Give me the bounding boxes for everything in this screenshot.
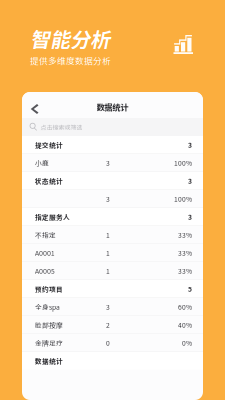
staticText: 3 — [106, 194, 110, 204]
staticText: 3 — [106, 158, 110, 168]
staticText: 指定服务人 — [35, 212, 70, 222]
staticText: 不指定 — [35, 230, 56, 240]
button[interactable]: 金牌足疗 — [22, 334, 203, 351]
staticText: 60% — [178, 302, 192, 312]
button[interactable]: 状态统计 — [22, 172, 203, 189]
button[interactable]: 不指定 — [22, 226, 203, 243]
staticText: 1 — [106, 248, 110, 258]
button[interactable]: 数据统计 — [22, 352, 203, 369]
staticText: 0 — [106, 338, 110, 348]
staticText: 脸部按摩 — [35, 320, 63, 330]
staticText: 提供多维度数据分析 — [30, 54, 111, 67]
button[interactable]: A0005 — [22, 262, 203, 279]
button[interactable]: 小鹿 — [22, 154, 203, 171]
staticText: A0005 — [35, 266, 55, 276]
staticText: A0001 — [35, 248, 55, 258]
staticText: 1 — [106, 266, 110, 276]
staticText: 3 — [188, 140, 192, 150]
staticText: 状态统计 — [35, 176, 63, 186]
staticText: 100% — [174, 158, 192, 168]
staticText: 33% — [178, 266, 192, 276]
staticText: 100% — [174, 194, 192, 204]
staticText: 5 — [188, 284, 192, 294]
staticText: 33% — [178, 230, 192, 240]
button[interactable]: A0001 — [22, 244, 203, 261]
staticText: 智能分析 — [30, 24, 110, 53]
staticText: 数据统计 — [96, 101, 128, 113]
staticText: 提交统计 — [35, 140, 63, 150]
button[interactable]: 全身spa — [22, 298, 203, 315]
staticText: 全身spa — [35, 302, 60, 312]
staticText: 小鹿 — [35, 158, 49, 168]
staticText: 3 — [188, 176, 192, 186]
staticText: 点击搜索或筛选 — [40, 123, 82, 131]
staticText: 3 — [106, 302, 110, 312]
staticText: 预约项目 — [35, 284, 63, 294]
staticText: 2 — [106, 320, 110, 330]
button[interactable]: 预约项目 — [22, 280, 203, 297]
staticText: 40% — [178, 320, 192, 330]
button[interactable]: 提交统计 — [22, 136, 203, 153]
button[interactable]: 指定服务人 — [22, 208, 203, 225]
staticText: 数据统计 — [35, 356, 63, 366]
staticText: 金牌足疗 — [35, 338, 63, 348]
button[interactable]: 点击搜索或筛选 — [22, 118, 203, 136]
staticText: 1 — [106, 230, 110, 240]
staticText: 0% — [182, 338, 192, 348]
button[interactable]: 脸部按摩 — [22, 316, 203, 333]
button[interactable]: 返回 — [22, 96, 45, 118]
staticText: 3 — [188, 212, 192, 222]
staticText: 33% — [178, 248, 192, 258]
button[interactable] — [22, 190, 203, 207]
